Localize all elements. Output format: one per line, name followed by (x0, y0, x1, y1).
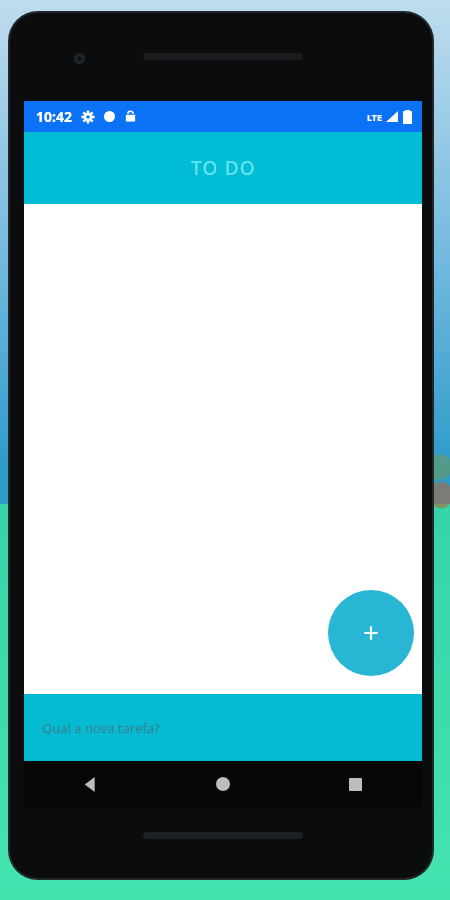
button[interactable]: Back (24, 761, 156, 807)
staticText: LTE (367, 111, 383, 123)
staticText: 10:42 (36, 107, 72, 126)
staticText: TO DO (191, 155, 256, 181)
button[interactable]: Recent apps (289, 761, 422, 807)
staticText: Qual a nova tarefa? (42, 719, 160, 737)
button[interactable]: Qual a nova tarefa? (24, 694, 422, 761)
button[interactable]: Add task (328, 590, 414, 676)
button[interactable]: Home (156, 761, 289, 807)
